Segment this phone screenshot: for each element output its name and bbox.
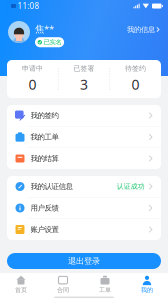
button[interactable]: 工单 [84,273,126,295]
staticText: 账户设置 [30,225,58,234]
staticText: 3 [80,75,88,94]
button[interactable]: 我的签约 [7,105,161,126]
staticText: 0 [132,75,140,94]
staticText: 首页 [15,286,27,294]
staticText: 认证成功 [117,182,145,191]
staticText: 工单 [99,286,111,294]
staticText: 申请中 [22,64,43,73]
button[interactable]: 用户反馈 [7,197,161,218]
staticText: 已实名 [43,38,61,46]
button[interactable]: 合同 [42,273,84,295]
staticText: 我的认证信息 [30,182,72,191]
staticText: 退出登录 [68,256,100,266]
staticText: 11:08 [17,1,39,11]
staticText: 已签署 [73,64,94,73]
button[interactable]: 退出登录 [7,253,161,269]
button[interactable]: 已签署 [59,60,109,98]
button[interactable]: 我的 [126,273,168,295]
button[interactable]: 账户设置 [7,219,161,240]
staticText: 0 [28,75,36,94]
button[interactable]: 我的认证信息 [7,176,161,197]
staticText: 我的信息 [127,25,155,34]
button[interactable]: 申请中 [7,60,58,98]
staticText: 合同 [57,286,69,294]
staticText: 待签约 [125,64,146,73]
staticText: 用户反馈 [30,203,58,213]
staticText: 焦** [35,22,54,35]
button[interactable]: 我的工单 [7,126,161,147]
staticText: 我的工单 [30,132,58,142]
button[interactable]: 我的结算 [7,148,161,169]
button[interactable]: 待签约 [110,60,161,98]
staticText: 我的 [141,286,153,294]
button[interactable]: 我的信息 [127,21,160,34]
button[interactable]: 首页 [0,273,42,295]
staticText: 我的结算 [30,154,58,163]
staticText: 我的签约 [30,111,58,120]
